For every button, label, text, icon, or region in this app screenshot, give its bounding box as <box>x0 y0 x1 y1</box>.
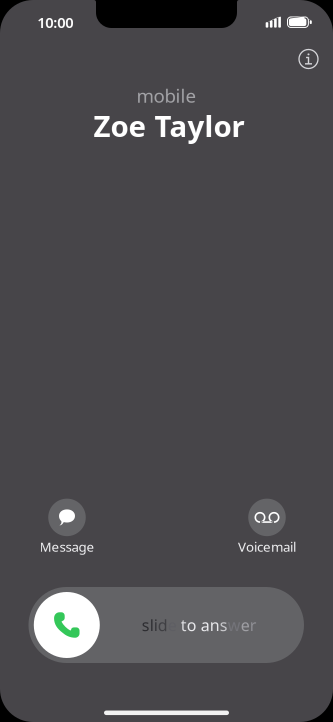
button[interactable]: Message <box>7 499 127 555</box>
staticText: n <box>210 614 220 636</box>
button[interactable]: Call details <box>293 44 323 74</box>
staticText: Message <box>39 538 94 555</box>
staticText: i <box>154 614 158 636</box>
staticText: d <box>158 614 168 636</box>
button[interactable]: s <box>28 587 304 663</box>
staticText: e <box>241 614 250 636</box>
staticText: s <box>220 614 228 636</box>
staticText: mobile <box>136 83 196 108</box>
staticText: w <box>228 614 241 636</box>
staticText: s <box>142 614 150 636</box>
staticText: Voicemail <box>238 538 296 555</box>
staticText: Zoe Taylor <box>93 106 244 145</box>
staticText: a <box>201 614 210 636</box>
staticText: 10:00 <box>37 12 73 32</box>
staticText: t <box>181 614 187 636</box>
staticText: r <box>250 614 257 636</box>
button[interactable]: Voicemail <box>207 499 327 555</box>
staticText: l <box>150 614 154 636</box>
staticText: o <box>187 614 197 636</box>
